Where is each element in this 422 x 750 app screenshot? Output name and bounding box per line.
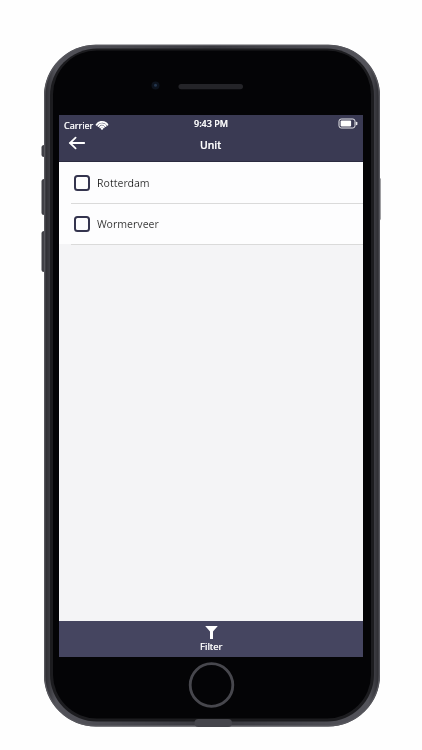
button[interactable]: Rotterdam <box>59 162 363 204</box>
staticText: Carrier <box>64 119 94 131</box>
staticText: 9:43 PM <box>194 117 228 129</box>
staticText: Filter <box>200 640 223 653</box>
button[interactable]: Wormerveer <box>59 204 363 244</box>
staticText: Unit <box>200 138 222 152</box>
button[interactable]: Filter <box>59 621 363 657</box>
button[interactable] <box>61 133 93 153</box>
staticText: Wormerveer <box>97 217 159 231</box>
staticText: Rotterdam <box>97 176 150 190</box>
